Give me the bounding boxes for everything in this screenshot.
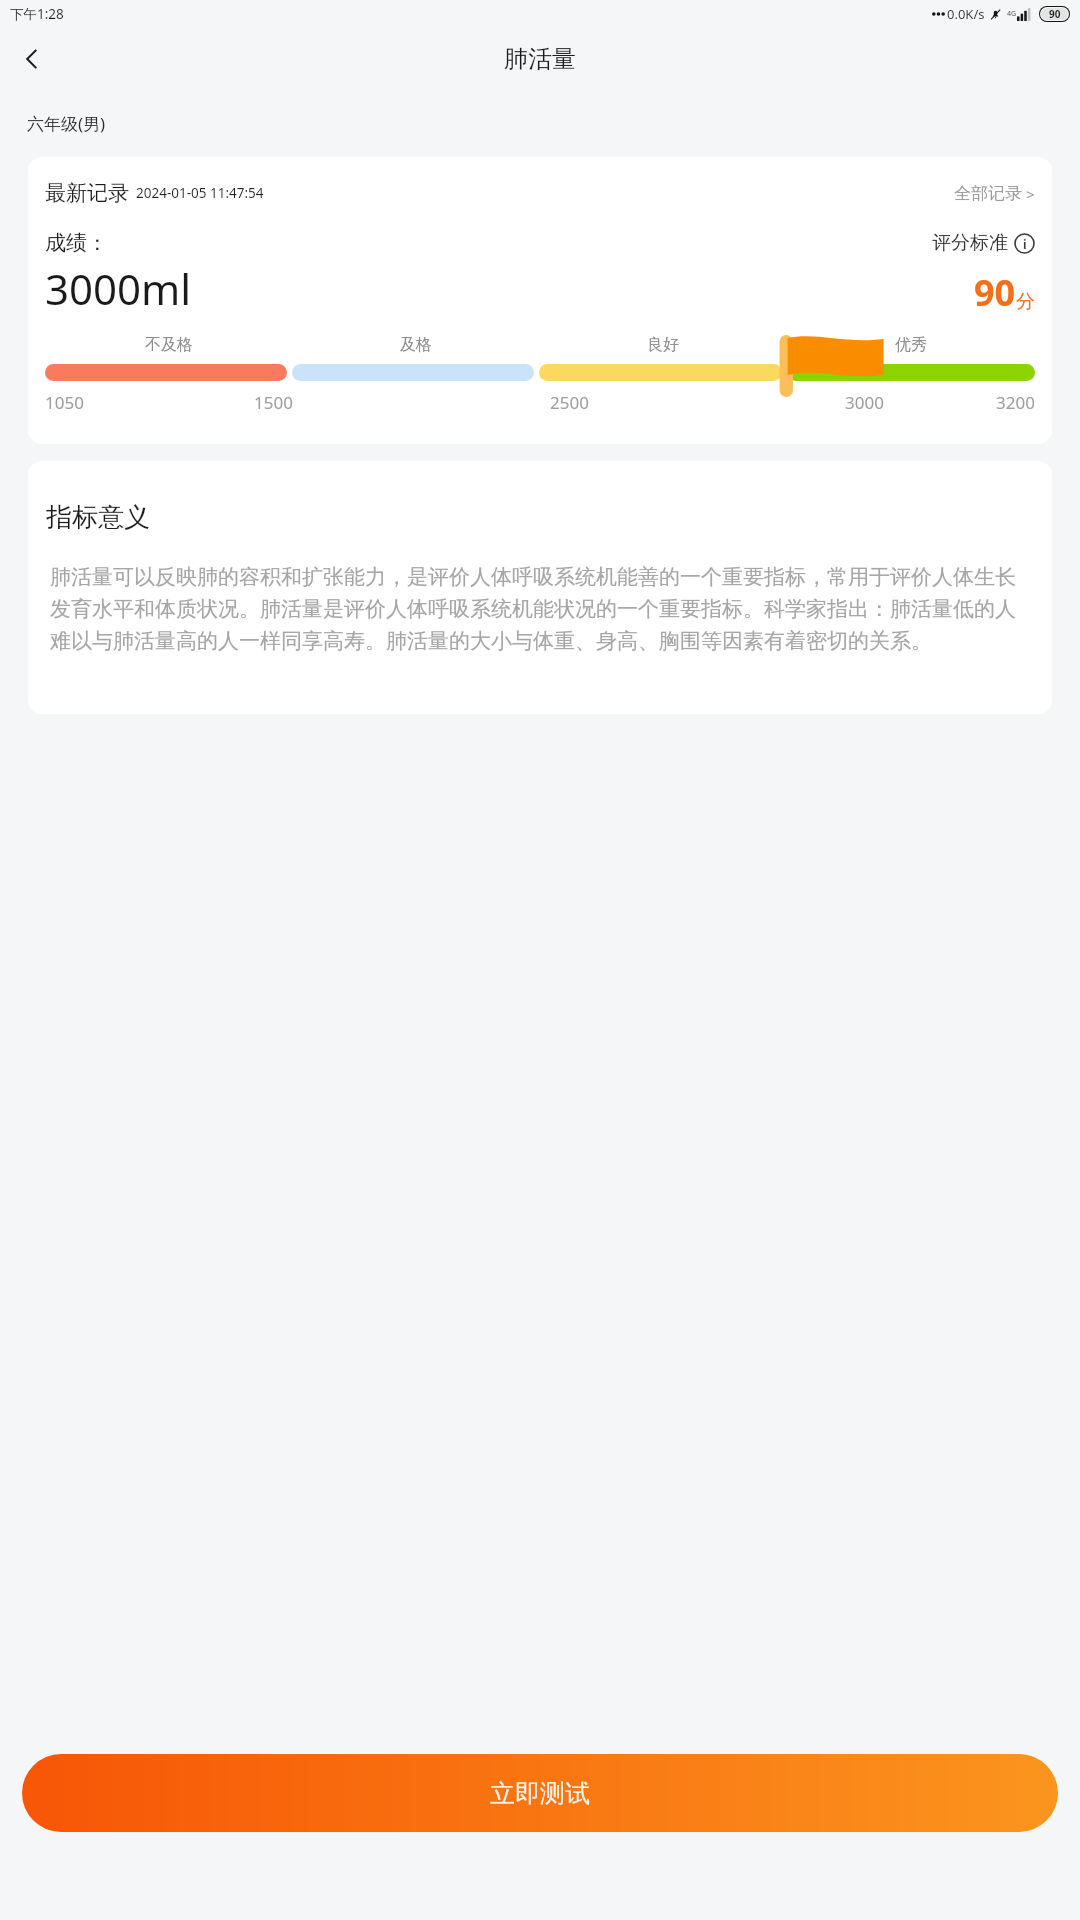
staticText: 不及格 bbox=[145, 335, 193, 355]
staticText: 及格 bbox=[400, 335, 432, 355]
staticText: > bbox=[1026, 184, 1035, 204]
staticText: 1500 bbox=[254, 391, 293, 414]
button[interactable]: 立即测试 bbox=[22, 1754, 1058, 1832]
staticText: 良好 bbox=[647, 335, 679, 355]
staticText: 3000ml bbox=[45, 260, 192, 317]
staticText: 90 bbox=[974, 268, 1016, 317]
staticText: 全部记录 bbox=[954, 183, 1022, 204]
staticText: 4G bbox=[1007, 9, 1017, 19]
staticText: 3000 bbox=[845, 391, 884, 414]
button[interactable]: 评分标准 bbox=[932, 231, 1035, 255]
staticText: 分 bbox=[1016, 290, 1035, 314]
staticText: 立即测试 bbox=[490, 1778, 590, 1809]
staticText: 肺活量 bbox=[504, 44, 576, 74]
staticText: 90 bbox=[1049, 7, 1061, 21]
button[interactable]: Back bbox=[8, 35, 56, 83]
staticText: 1050 bbox=[45, 391, 84, 414]
staticText: 指标意义 bbox=[46, 501, 150, 534]
staticText: 成绩： bbox=[45, 230, 108, 256]
staticText: 最新记录 bbox=[45, 180, 129, 206]
staticText: 下午1:28 bbox=[10, 5, 64, 23]
other: Scoring info bbox=[1014, 233, 1035, 254]
staticText: 评分标准 bbox=[932, 231, 1008, 255]
staticText: 0.0K/s bbox=[947, 5, 985, 23]
staticText: 2024-01-05 11:47:54 bbox=[136, 184, 264, 202]
staticText: i bbox=[1023, 236, 1027, 252]
staticText: 2500 bbox=[550, 391, 589, 414]
staticText: 3200 bbox=[996, 391, 1035, 414]
staticText: 肺活量可以反映肺的容积和扩张能力，是评价人体呼吸系统机能善的一个重要指标，常用于… bbox=[50, 564, 1034, 654]
button[interactable]: 全部记录 bbox=[954, 183, 1035, 204]
staticText: 优秀 bbox=[895, 335, 927, 355]
staticText: 六年级(男) bbox=[27, 112, 106, 135]
